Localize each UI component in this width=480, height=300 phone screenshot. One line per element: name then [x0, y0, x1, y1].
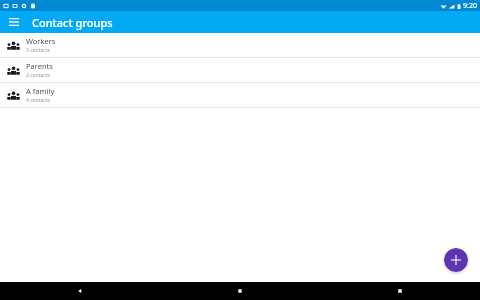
staticText: Contact groups — [32, 15, 113, 30]
staticText: 4 contacts — [26, 97, 50, 104]
button[interactable]: Back — [0, 282, 160, 300]
button[interactable]: Open navigation drawer — [6, 14, 22, 30]
button[interactable]: A family — [0, 83, 480, 107]
button[interactable]: Parents — [0, 58, 480, 82]
button[interactable]: Workers — [0, 33, 480, 57]
staticText: Parents — [26, 61, 53, 71]
staticText: 9:20 — [463, 1, 477, 11]
staticText: 3 contacts — [26, 47, 50, 54]
staticText: 2 contacts — [26, 72, 50, 79]
button[interactable]: Home — [160, 282, 320, 300]
staticText: Workers — [26, 36, 56, 46]
button[interactable]: Recent apps — [320, 282, 480, 300]
staticText: A family — [26, 86, 55, 96]
button[interactable]: Create contact group — [444, 248, 468, 272]
